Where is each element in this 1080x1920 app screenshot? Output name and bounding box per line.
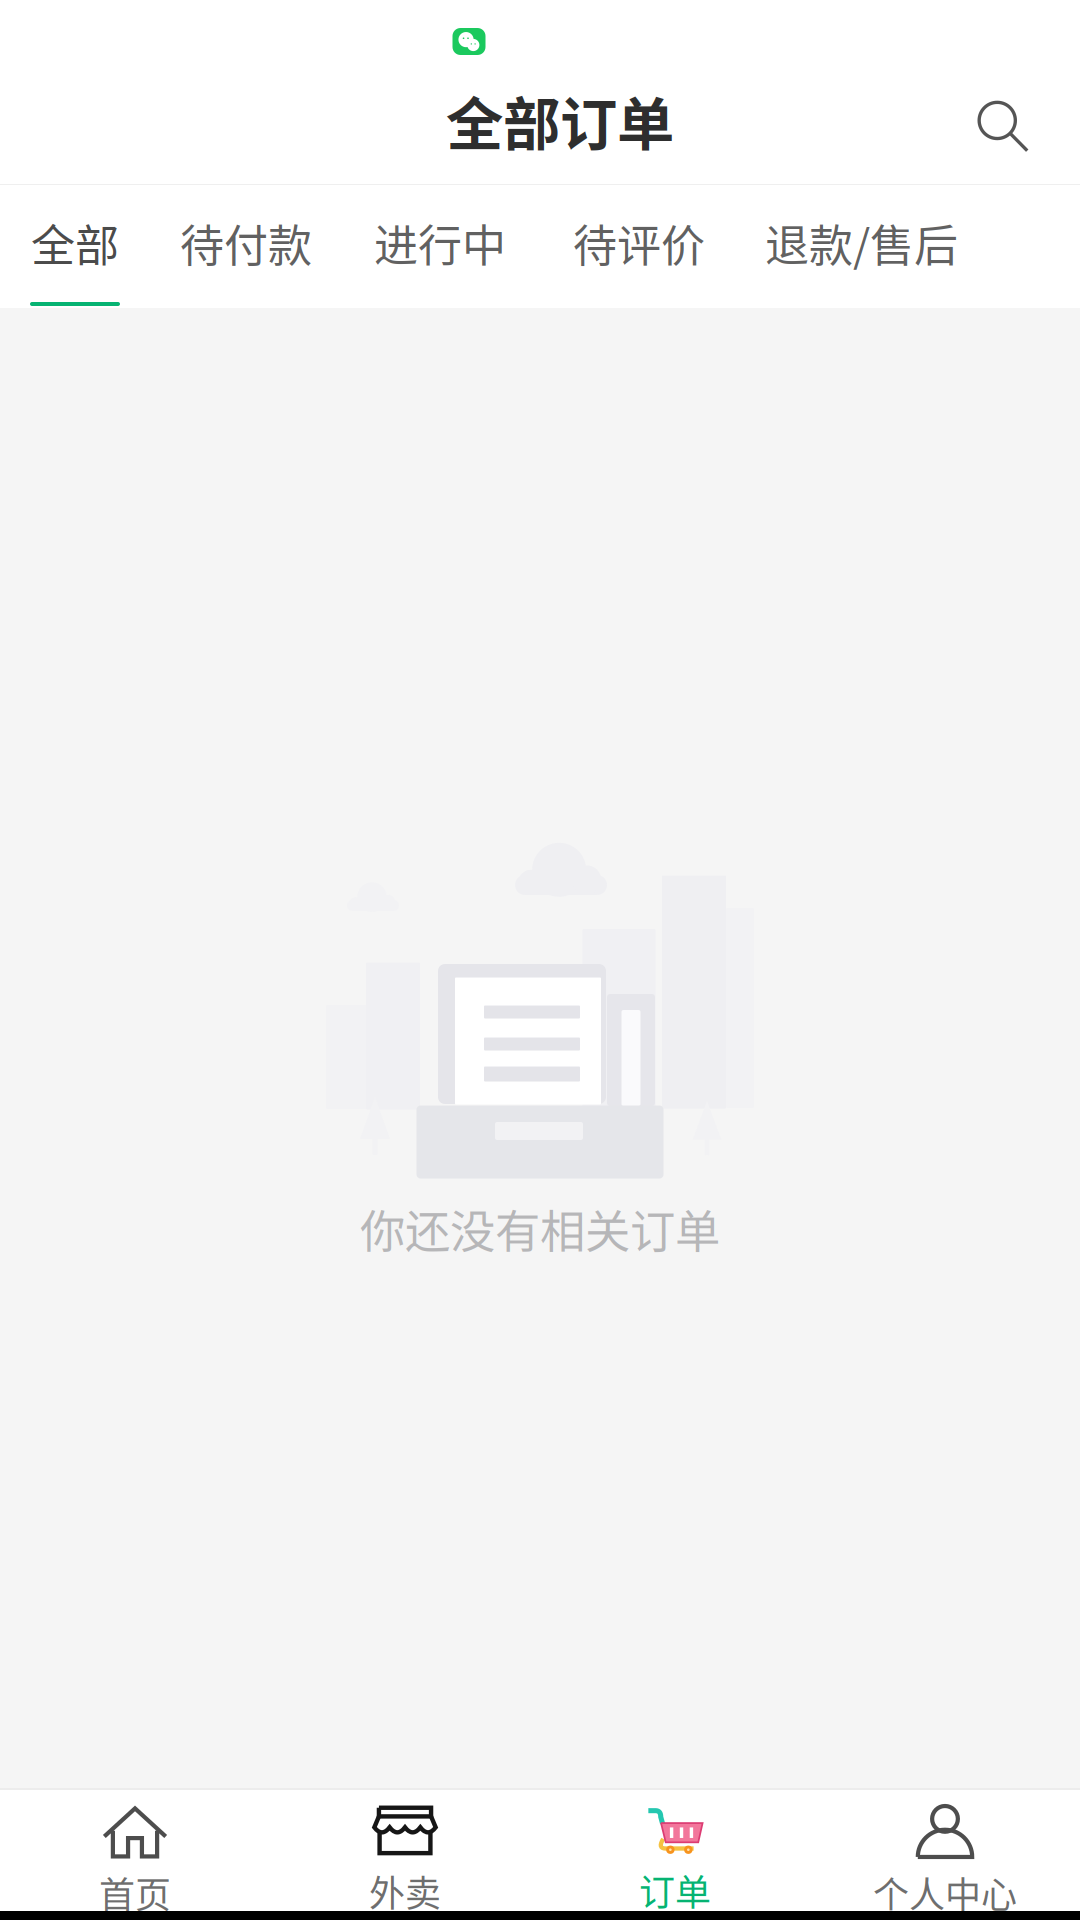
staticText: 全部 <box>31 211 119 275</box>
button[interactable]: 进行中 <box>374 185 506 308</box>
button[interactable]: 首页 <box>0 1790 270 1911</box>
staticText: 全部订单 <box>446 78 674 161</box>
button[interactable]: 订单 <box>540 1790 810 1911</box>
staticText: 你还没有相关订单 <box>360 1196 720 1262</box>
button[interactable]: 搜索 <box>952 66 1056 170</box>
button[interactable]: 个人中心 <box>810 1790 1080 1911</box>
staticText: 进行中 <box>374 211 506 275</box>
button[interactable]: 待评价 <box>573 185 705 308</box>
button[interactable]: 退款/售后 <box>765 185 958 308</box>
button[interactable]: 待付款 <box>180 185 312 308</box>
staticText: 外卖 <box>369 1865 441 1917</box>
staticText: 首页 <box>99 1866 171 1918</box>
staticText: 待付款 <box>180 211 312 275</box>
staticText: 退款/售后 <box>765 211 958 275</box>
staticText: 待评价 <box>573 211 705 275</box>
button[interactable]: 外卖 <box>270 1790 540 1911</box>
button[interactable]: 全部 <box>30 185 120 308</box>
staticText: 订单 <box>639 1864 711 1916</box>
staticText: 个人中心 <box>873 1866 1017 1918</box>
